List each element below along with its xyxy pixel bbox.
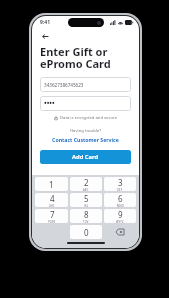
- button[interactable]: Contact Customer Service: [52, 136, 119, 143]
- staticText: Data is encrypted and secure: [60, 115, 118, 121]
- staticText: 8: [84, 209, 89, 220]
- staticText: ABC: [83, 188, 89, 191]
- button[interactable]: 4: [35, 193, 68, 207]
- staticText: WXYZ: [116, 220, 124, 223]
- staticText: 9:41: [40, 19, 50, 26]
- button[interactable]: 9: [104, 209, 136, 223]
- button[interactable]: Delete: [103, 225, 137, 239]
- staticText: MNO: [117, 204, 124, 207]
- staticText: 6: [118, 193, 123, 204]
- button[interactable]: Back: [40, 31, 50, 41]
- button[interactable]: 6: [104, 193, 136, 207]
- staticText: 2: [84, 177, 89, 188]
- staticText: Add Card: [72, 153, 99, 161]
- button[interactable]: 1: [35, 177, 68, 191]
- staticText: 0: [84, 227, 89, 238]
- button[interactable]: Add Card: [40, 150, 131, 164]
- button[interactable]: 5: [70, 193, 102, 207]
- staticText: 1: [49, 179, 54, 190]
- button[interactable]: 343627386745623: [40, 77, 131, 92]
- staticText: 9: [118, 209, 123, 220]
- staticText: JKL: [84, 204, 89, 207]
- staticText: 3: [118, 177, 123, 188]
- button[interactable]: 0: [70, 225, 102, 239]
- staticText: 4: [50, 193, 55, 204]
- staticText: ••••: [44, 99, 55, 109]
- button[interactable]: 3: [104, 177, 136, 191]
- button[interactable]: 8: [70, 209, 102, 223]
- staticText: GHI: [49, 204, 55, 207]
- staticText: 7: [50, 209, 55, 220]
- staticText: Having trouble?: [40, 128, 131, 134]
- staticText: 343627386745623: [44, 82, 84, 88]
- staticText: 5: [84, 193, 89, 204]
- button[interactable]: 2: [70, 177, 102, 191]
- staticText: Enter Gift or ePromo Card: [40, 44, 111, 71]
- staticText: TUV: [83, 220, 89, 223]
- staticText: PQRS: [48, 220, 56, 223]
- button[interactable]: 7: [35, 209, 68, 223]
- button[interactable]: ••••: [40, 96, 131, 111]
- staticText: DEF: [117, 188, 123, 191]
